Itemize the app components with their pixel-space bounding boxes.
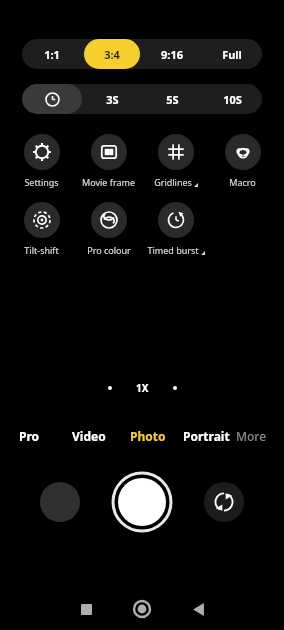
button[interactable]: More	[236, 423, 284, 449]
staticText: Macro	[229, 176, 256, 188]
button[interactable]: Switch camera	[204, 482, 244, 522]
staticText: 3:4	[104, 47, 120, 62]
staticText: 9:16	[161, 47, 183, 62]
button[interactable]: Settings	[8, 134, 75, 188]
button[interactable]: Full	[204, 39, 260, 69]
button[interactable]: Photo	[118, 423, 177, 449]
button[interactable]: 5S	[144, 84, 200, 114]
button[interactable]: Home	[126, 593, 158, 625]
button[interactable]: Movie frame	[75, 134, 142, 188]
button[interactable]: Shutter	[113, 473, 171, 531]
staticText: Pro colour	[87, 244, 131, 256]
button[interactable]: Gallery	[40, 482, 80, 522]
staticText: 10S	[223, 92, 242, 107]
staticText: 1:1	[44, 47, 60, 62]
staticText: Pro	[19, 428, 40, 444]
button[interactable]: Video	[59, 423, 118, 449]
button[interactable]: 3:4	[84, 39, 140, 69]
button[interactable]: 10S	[204, 84, 260, 114]
button[interactable]: Tilt-shift	[8, 202, 75, 256]
staticText: Full	[222, 47, 242, 62]
staticText: Portrait	[183, 428, 230, 444]
button[interactable]: 9:16	[144, 39, 200, 69]
staticText: 5S	[166, 92, 179, 107]
staticText: Tilt-shift	[24, 244, 59, 256]
staticText: Timed burst	[147, 244, 199, 256]
button[interactable]: 1:1	[24, 39, 80, 69]
button[interactable]: 3S	[84, 84, 140, 114]
button[interactable]: Timed burst	[142, 202, 209, 256]
button[interactable]: Recents	[70, 593, 102, 625]
staticText: Gridlines	[154, 176, 192, 188]
staticText: Movie frame	[82, 176, 135, 188]
staticText: 1X	[136, 381, 149, 395]
staticText: Settings	[24, 176, 59, 188]
button[interactable]: Gridlines	[142, 134, 209, 188]
button[interactable]: Timer off	[22, 84, 82, 114]
button[interactable]: Macro	[209, 134, 276, 188]
staticText: Video	[72, 428, 106, 444]
button[interactable]: Pro colour	[75, 202, 142, 256]
staticText: 3S	[106, 92, 119, 107]
staticText: More	[236, 428, 267, 444]
staticText: Photo	[130, 428, 166, 444]
button[interactable]: Back	[182, 593, 214, 625]
button[interactable]: Pro	[0, 423, 59, 449]
button[interactable]: Portrait	[177, 423, 236, 449]
